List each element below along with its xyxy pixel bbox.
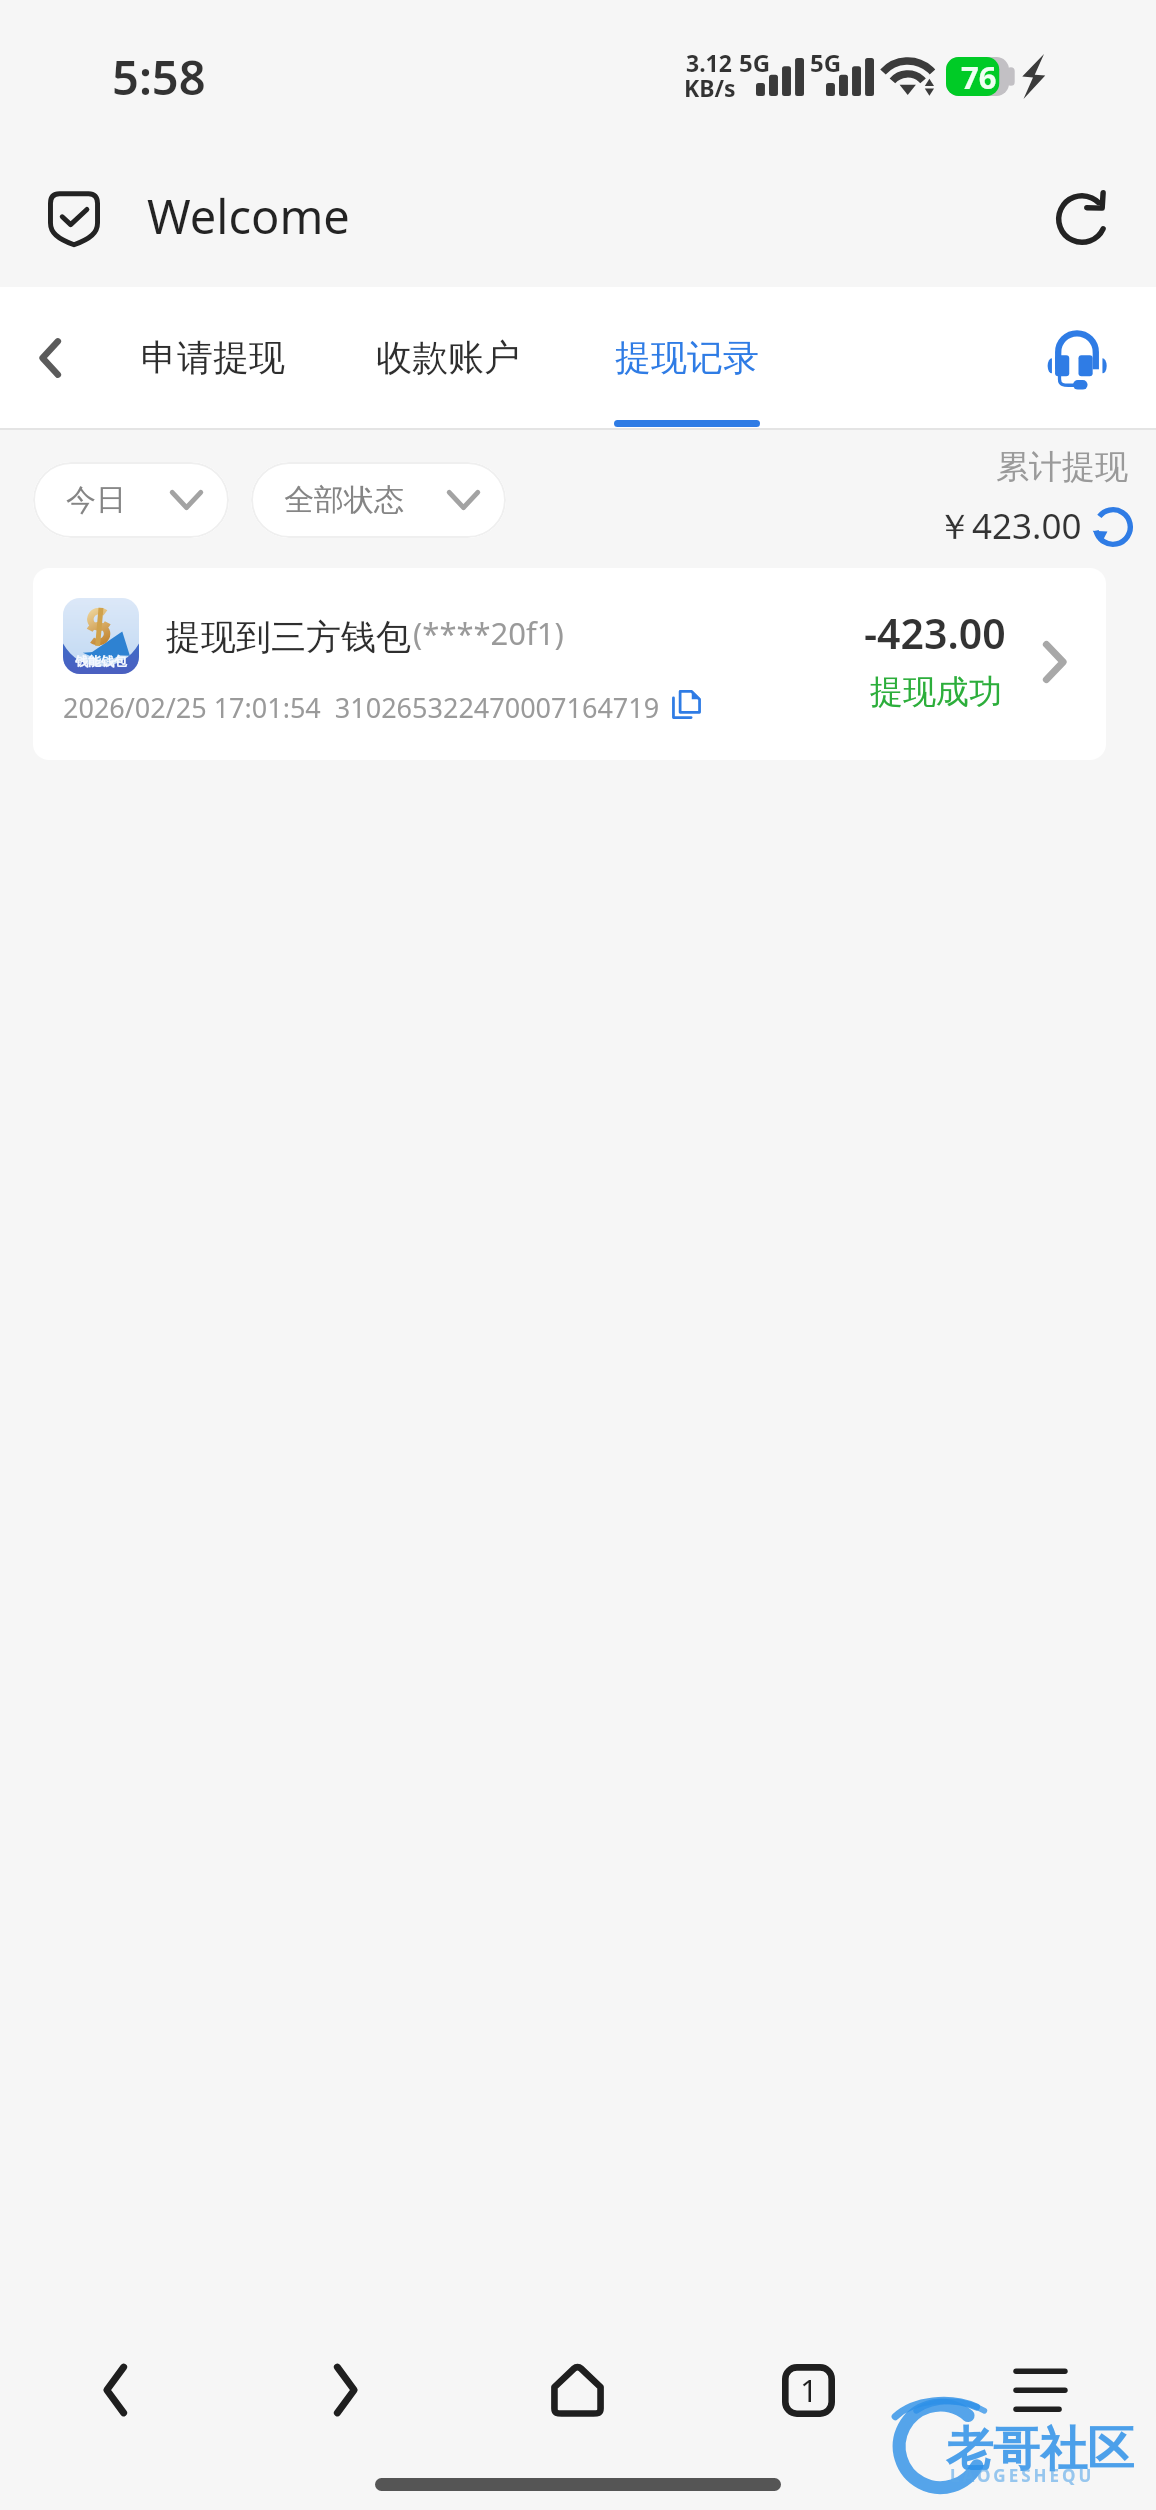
staticText: 今日 xyxy=(66,481,126,519)
button[interactable]: Back xyxy=(0,287,100,428)
staticText: 2026/02/25 17:01:54 31026532247000716471… xyxy=(63,689,660,726)
button[interactable]: Customer service xyxy=(1031,314,1123,406)
button[interactable]: Refresh xyxy=(1036,173,1128,265)
staticText: (****20f1) xyxy=(413,612,564,654)
button[interactable]: Forward xyxy=(286,2330,406,2450)
staticText: 申请提现 xyxy=(141,335,285,380)
staticText: 提现到三方钱包 xyxy=(166,615,411,659)
button[interactable]: Refresh total xyxy=(1078,492,1148,562)
staticText: 提现记录 xyxy=(615,335,759,380)
button[interactable]: 申请提现 xyxy=(125,301,301,413)
staticText: Welcome xyxy=(147,184,350,248)
staticText: 3.12 xyxy=(686,47,732,78)
button[interactable]: Copy transaction number xyxy=(652,670,720,738)
staticText: 提现成功 xyxy=(870,671,1002,713)
staticText: 1 xyxy=(800,2369,818,2411)
staticText: 5G xyxy=(810,46,842,79)
staticText: KB/s xyxy=(684,72,736,103)
staticText: ￥423.00 xyxy=(937,502,1082,550)
button[interactable]: 今日 xyxy=(33,462,229,538)
staticText: 全部状态 xyxy=(284,481,404,519)
button[interactable]: Verified xyxy=(28,173,120,265)
staticText: 钱能钱包 xyxy=(75,653,127,669)
staticText: 老哥社区 xyxy=(946,2420,1134,2479)
button[interactable]: Menu xyxy=(980,2330,1100,2450)
button[interactable]: Tabs xyxy=(748,2330,868,2450)
staticText: 5:58 xyxy=(112,45,206,109)
staticText: LAOGESHEQU xyxy=(950,2464,1095,2487)
button[interactable]: 全部状态 xyxy=(251,462,506,538)
staticText: 累计提现 xyxy=(996,446,1128,488)
staticText: 收款账户 xyxy=(376,335,520,380)
staticText: 5G xyxy=(739,46,771,79)
button[interactable]: Back xyxy=(55,2330,175,2450)
staticText: 76 xyxy=(961,56,997,95)
staticText: -423.00 xyxy=(864,605,1006,661)
button[interactable]: 钱能钱包 xyxy=(33,568,1106,760)
button[interactable]: 提现记录 xyxy=(597,301,777,413)
button[interactable]: Home xyxy=(517,2330,637,2450)
button[interactable]: 收款账户 xyxy=(360,301,536,413)
